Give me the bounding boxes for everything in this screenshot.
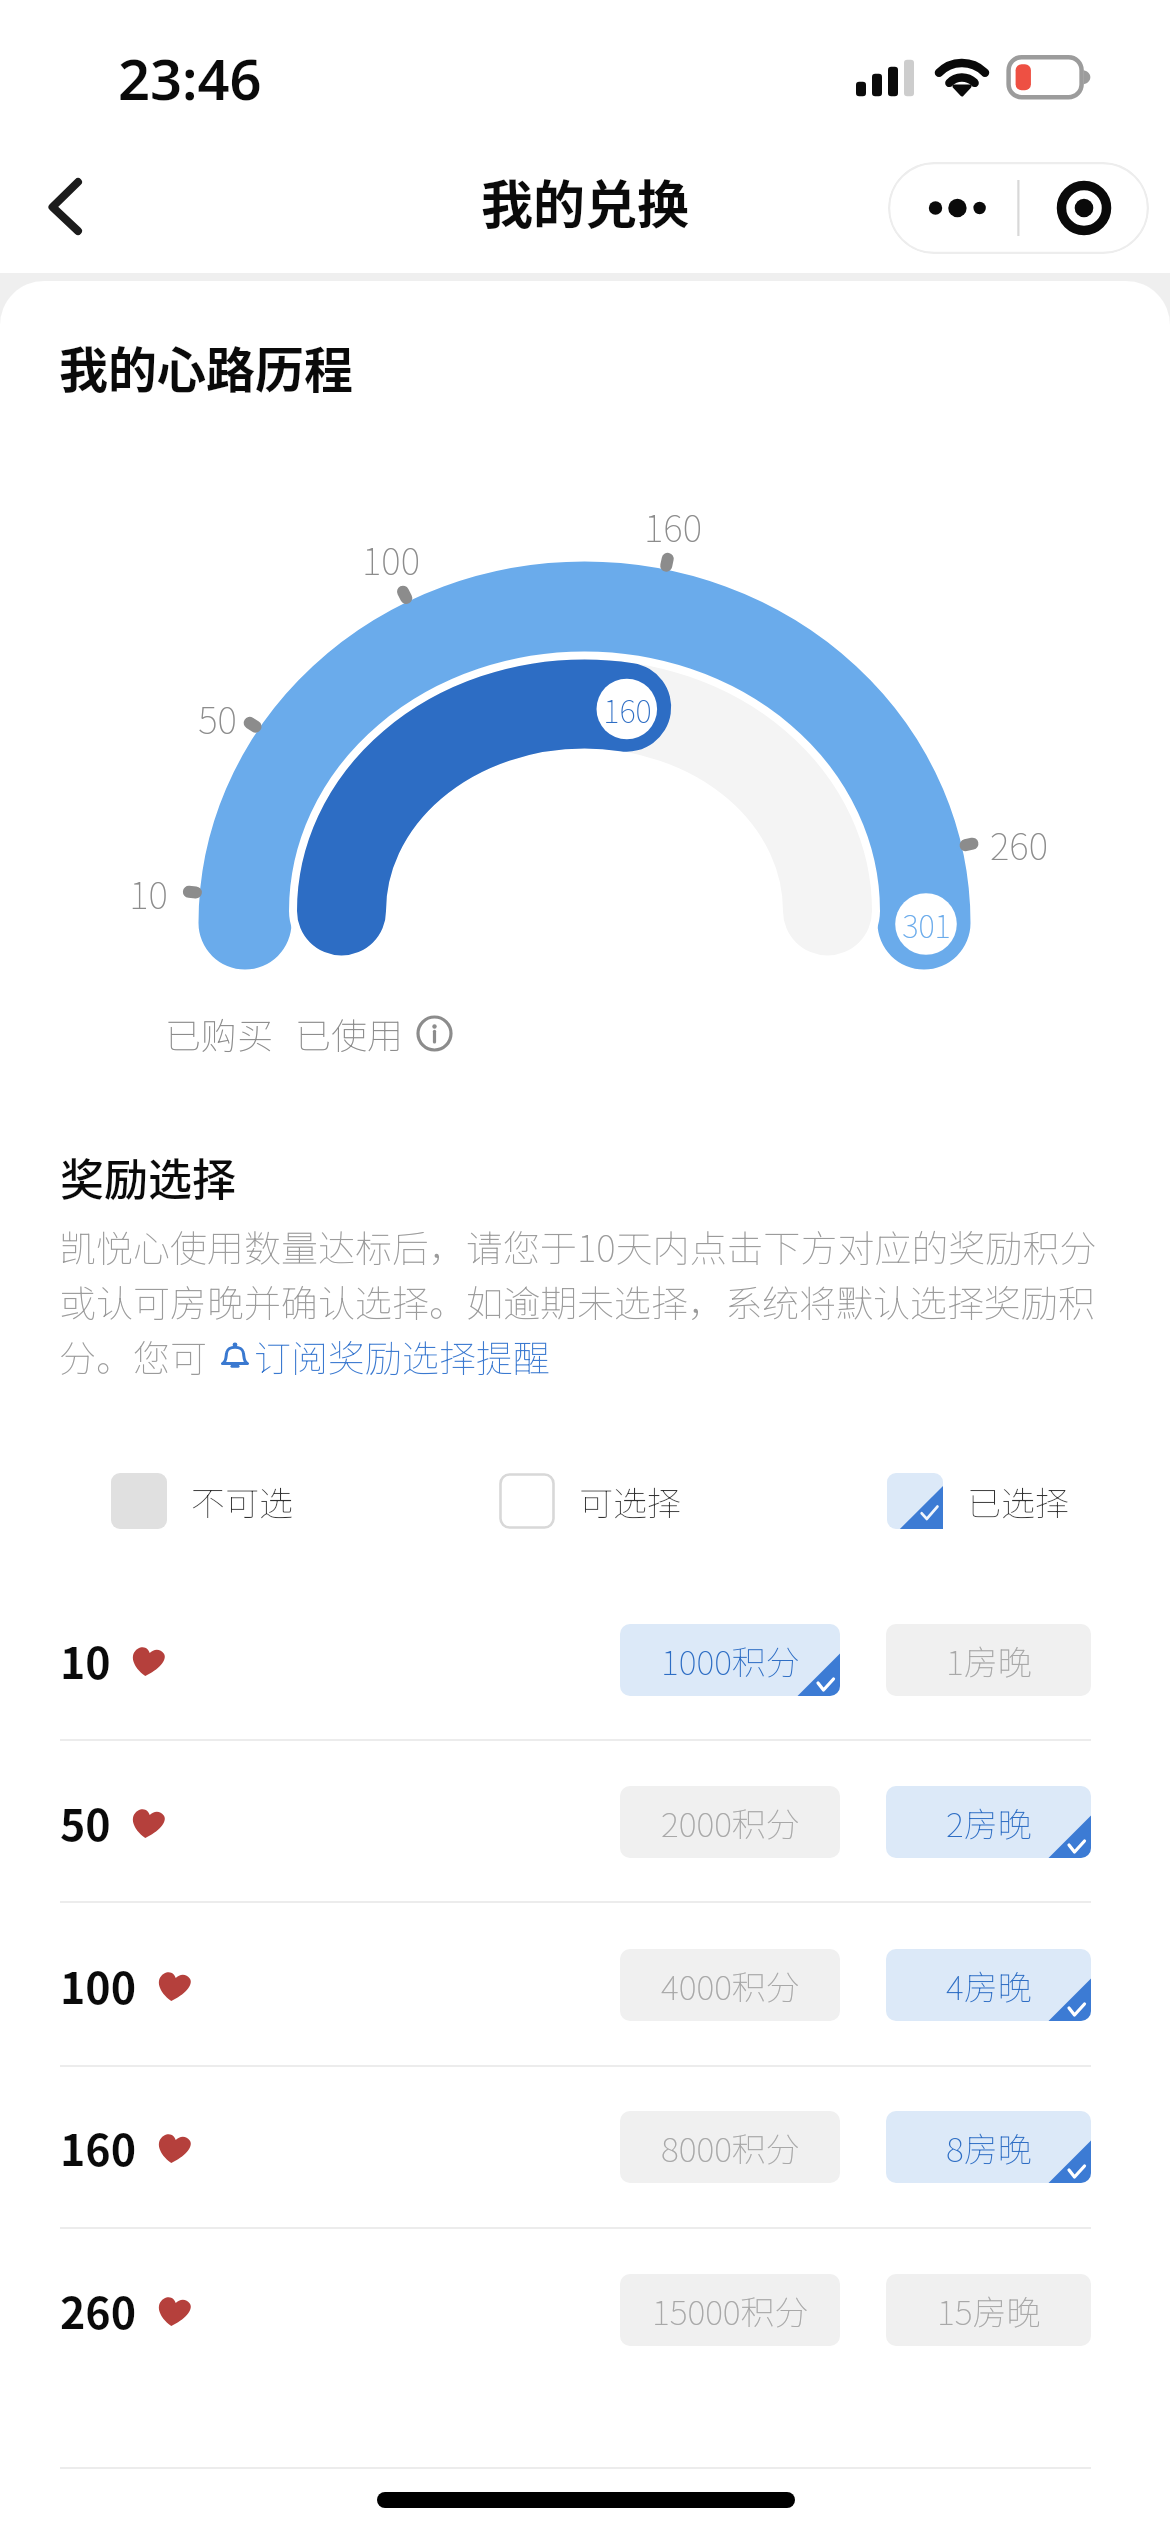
button[interactable]: 不可选: [111, 1451, 293, 1551]
staticText: 23:46: [118, 40, 262, 110]
button[interactable]: 2000积分: [620, 1786, 840, 1858]
staticText: 1000积分: [661, 1636, 800, 1685]
staticText: 我的兑换: [481, 164, 690, 239]
button[interactable]: 1000积分: [620, 1624, 840, 1696]
button[interactable]: 可选择: [499, 1451, 681, 1551]
button[interactable]: 15房晚: [886, 2274, 1091, 2346]
staticText: 10: [129, 866, 168, 920]
button[interactable]: More options and close: [888, 162, 1149, 254]
button[interactable]: 1房晚: [886, 1624, 1091, 1696]
staticText: 50: [198, 691, 237, 745]
staticText: 260: [990, 817, 1048, 871]
staticText: 8000积分: [661, 2123, 800, 2172]
staticText: 100: [362, 532, 420, 586]
button[interactable]: 4房晚: [886, 1949, 1091, 2021]
button[interactable]: 8房晚: [886, 2111, 1091, 2183]
staticText: 已使用: [295, 1007, 404, 1059]
staticText: 10: [60, 1629, 111, 1691]
button[interactable]: 已选择: [887, 1451, 1069, 1551]
staticText: 可选择: [579, 1477, 681, 1526]
staticText: 1房晚: [946, 1636, 1032, 1685]
staticText: 分。您可: [59, 1329, 216, 1383]
staticText: 订阅奖励选择提醒: [254, 1329, 550, 1383]
staticText: 50: [60, 1791, 111, 1853]
staticText: 4000积分: [661, 1961, 800, 2010]
staticText: 凯悦心使用数量达标后，请您于10天内点击下方对应的奖励积分: [59, 1219, 1097, 1273]
staticText: 或认可房晚并确认选择。如逾期未选择，系统将默认选择奖励积: [59, 1274, 1095, 1328]
staticText: 160: [644, 499, 702, 553]
button[interactable]: Back: [12, 161, 118, 253]
staticText: 4房晚: [946, 1961, 1032, 2010]
staticText: 15房晚: [937, 2286, 1041, 2335]
staticText: 160: [60, 2116, 137, 2178]
button[interactable]: 8000积分: [620, 2111, 840, 2183]
staticText: 不可选: [191, 1477, 293, 1526]
staticText: 160: [603, 687, 652, 732]
staticText: 100: [60, 1954, 137, 2016]
staticText: 301: [902, 902, 951, 947]
staticText: 已选择: [967, 1477, 1069, 1526]
button[interactable]: 15000积分: [620, 2274, 840, 2346]
staticText: 15000积分: [652, 2286, 809, 2335]
button[interactable]: 订阅奖励选择提醒: [216, 1329, 550, 1383]
staticText: 260: [60, 2279, 137, 2341]
staticText: 我的心路历程: [59, 331, 354, 402]
staticText: 2房晚: [946, 1798, 1032, 1847]
button[interactable]: 4000积分: [620, 1949, 840, 2021]
staticText: 2000积分: [661, 1798, 800, 1847]
staticText: 已购买: [165, 1007, 274, 1059]
staticText: 奖励选择: [60, 1145, 236, 1209]
button[interactable]: 2房晚: [886, 1786, 1091, 1858]
staticText: 8房晚: [946, 2123, 1032, 2172]
